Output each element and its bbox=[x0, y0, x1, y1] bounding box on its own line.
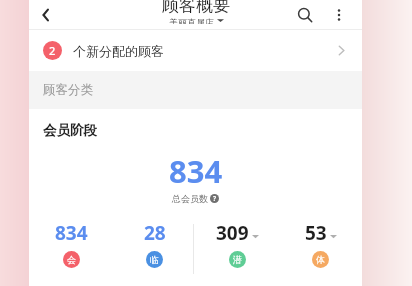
staticText: 美丽直属店 bbox=[169, 17, 214, 24]
button[interactable]: Back bbox=[29, 0, 63, 29]
staticText: 顾客分类 bbox=[43, 82, 93, 98]
button[interactable]: 309 bbox=[196, 218, 279, 280]
staticText: 会 bbox=[67, 254, 76, 265]
staticText: 53 bbox=[305, 220, 327, 246]
button[interactable]: 53 bbox=[279, 218, 362, 280]
staticText: 顾客概要 bbox=[162, 0, 230, 16]
button[interactable]: 美丽直属店 bbox=[169, 17, 224, 24]
button[interactable]: 2 bbox=[29, 30, 362, 71]
staticText: 834 bbox=[55, 220, 88, 246]
button[interactable]: 834 bbox=[29, 218, 113, 280]
button[interactable]: Help bbox=[210, 194, 219, 203]
staticText: 个新分配的顾客 bbox=[73, 43, 164, 59]
staticText: 体 bbox=[316, 254, 325, 265]
staticText: 28 bbox=[144, 220, 166, 246]
staticText: 2 bbox=[49, 43, 56, 58]
button[interactable]: Search bbox=[290, 0, 320, 29]
button[interactable]: More options bbox=[325, 1, 353, 29]
staticText: 潜 bbox=[233, 254, 242, 265]
staticText: 临 bbox=[150, 254, 159, 265]
staticText: 309 bbox=[216, 220, 249, 246]
staticText: 834 bbox=[169, 150, 223, 192]
staticText: ? bbox=[213, 194, 217, 203]
staticText: 总会员数 bbox=[172, 193, 208, 204]
staticText: 会员阶段 bbox=[43, 122, 97, 139]
button[interactable]: 28 bbox=[113, 218, 196, 280]
